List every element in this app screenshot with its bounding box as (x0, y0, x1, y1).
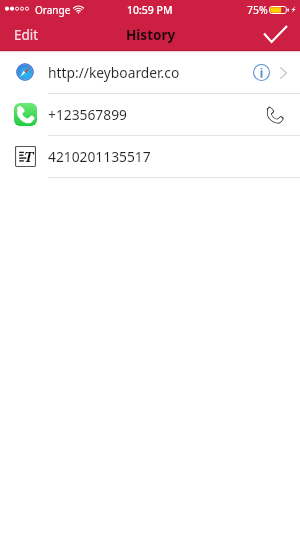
button[interactable]: http://keyboarder.co (0, 51, 300, 93)
button[interactable]: Done (261, 23, 300, 47)
button[interactable]: Edit (0, 22, 53, 48)
staticText: 4210201135517 (48, 147, 300, 166)
staticText: T (24, 147, 34, 166)
staticText: 10:59 PM (127, 3, 173, 17)
staticText: Orange (35, 3, 71, 17)
staticText: +123567899 (48, 105, 264, 124)
staticText: History (126, 26, 176, 44)
button[interactable]: Call (264, 104, 286, 126)
staticText: http://keyboarder.co (48, 63, 253, 82)
button[interactable]: +123567899 (0, 94, 300, 135)
staticText: 75% (247, 3, 268, 17)
button[interactable]: T (0, 136, 300, 177)
button[interactable]: More info (253, 64, 270, 81)
staticText: Edit (14, 26, 39, 44)
